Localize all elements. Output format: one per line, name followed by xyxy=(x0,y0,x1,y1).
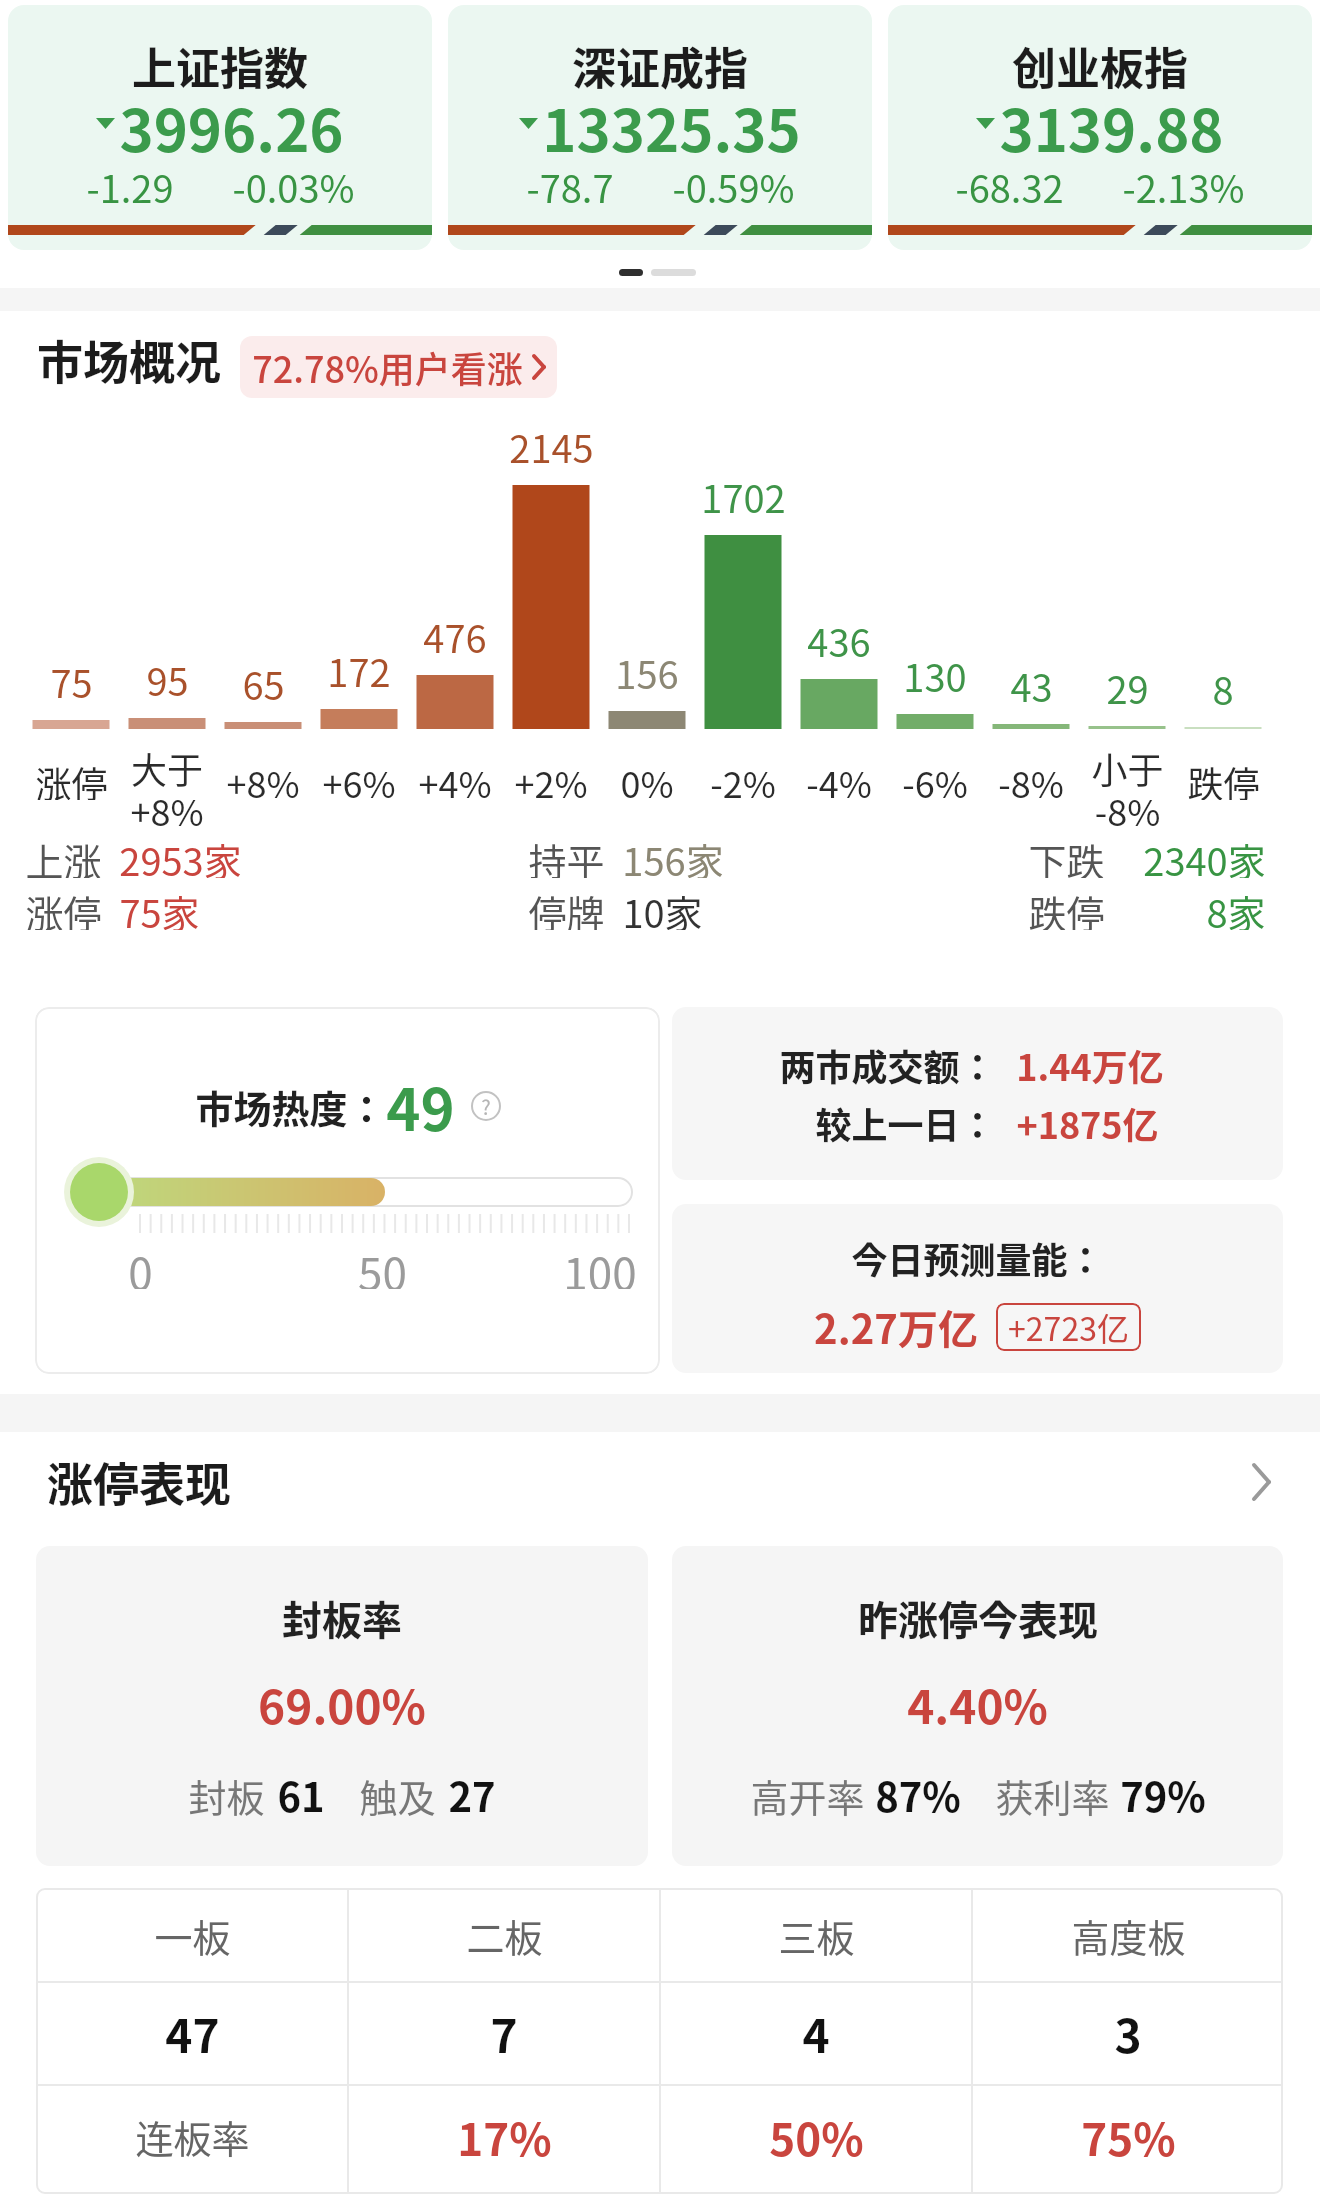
staticText: 2953家 xyxy=(119,832,242,878)
staticText: 4.40% xyxy=(907,1671,1048,1738)
staticText: 79% xyxy=(1120,1766,1206,1824)
staticText: -1.29 xyxy=(86,159,174,203)
staticText: 市场热度： xyxy=(195,1079,386,1134)
staticText: 持平 xyxy=(528,832,605,878)
staticText: 95 xyxy=(146,652,189,698)
staticText: 3996.26 xyxy=(119,85,344,159)
staticText: 获利率 xyxy=(995,1768,1110,1823)
button[interactable]: 今日预测量能： xyxy=(672,1204,1283,1373)
staticText: -8% xyxy=(998,756,1064,800)
staticText: 涨停表现 xyxy=(47,1448,231,1510)
staticText: +1875亿 xyxy=(1016,1097,1159,1149)
staticText: 小于 -8% xyxy=(1091,742,1164,830)
staticText: 创业板指 xyxy=(1012,34,1188,90)
staticText: 4 xyxy=(802,2000,830,2067)
staticText: 10家 xyxy=(622,884,703,930)
staticText: 156家 xyxy=(622,832,724,878)
staticText: -68.32 xyxy=(955,159,1064,203)
staticText: -6% xyxy=(902,756,968,800)
staticText: 2.27万亿 xyxy=(814,1298,978,1356)
staticText: -0.59% xyxy=(672,159,795,203)
button[interactable]: 昨涨停今表现 xyxy=(672,1546,1283,1866)
staticText: 72.78%用户看涨 xyxy=(252,341,523,393)
staticText: 2340家 xyxy=(1143,832,1266,878)
staticText: 封板 xyxy=(188,1768,265,1823)
staticText: 1702 xyxy=(701,469,786,515)
staticText: 上证指数 xyxy=(132,34,308,90)
staticText: 3139.88 xyxy=(999,85,1224,159)
staticText: 涨停 xyxy=(35,756,108,800)
staticText: 436 xyxy=(807,613,871,659)
button[interactable]: 两市成交额： xyxy=(672,1007,1283,1180)
staticText: 13325.35 xyxy=(542,85,801,159)
staticText: 17% xyxy=(457,2105,552,2169)
staticText: 0% xyxy=(620,756,674,800)
button[interactable]: 封板率 xyxy=(36,1546,648,1866)
staticText: 大于 +8% xyxy=(130,742,204,830)
staticText: 7 xyxy=(490,2000,518,2067)
staticText: +4% xyxy=(418,756,492,800)
staticText: 昨涨停今表现 xyxy=(858,1589,1098,1647)
staticText: 3 xyxy=(1114,2000,1142,2067)
staticText: 封板率 xyxy=(282,1589,402,1647)
staticText: 29 xyxy=(1106,660,1149,706)
staticText: +8% xyxy=(226,756,300,800)
staticText: +6% xyxy=(322,756,396,800)
staticText: 8家 xyxy=(1206,884,1266,930)
staticText: 50 xyxy=(358,1239,407,1289)
staticText: 今日预测量能： xyxy=(851,1232,1104,1284)
staticText: 连板率 xyxy=(135,2109,250,2164)
button[interactable]: 72.78%用户看涨 xyxy=(240,336,557,398)
staticText: 二板 xyxy=(466,1908,543,1963)
staticText: 61 xyxy=(277,1766,325,1824)
staticText: 75家 xyxy=(119,884,200,930)
staticText: 65 xyxy=(242,656,285,702)
staticText: 三板 xyxy=(778,1908,855,1963)
staticText: 较上一日： xyxy=(815,1097,996,1149)
staticText: 75% xyxy=(1081,2105,1176,2169)
staticText: -0.03% xyxy=(232,159,355,203)
staticText: 8 xyxy=(1212,661,1234,707)
staticText: 下跌 xyxy=(1028,832,1105,878)
staticText: 47 xyxy=(165,2000,220,2067)
staticText: 75 xyxy=(50,654,93,700)
button[interactable]: 深证成指 xyxy=(448,5,872,250)
staticText: 一板 xyxy=(154,1908,231,1963)
staticText: 停牌 xyxy=(528,884,605,930)
staticText: 49 xyxy=(386,1064,455,1148)
staticText: +2723亿 xyxy=(1008,1304,1129,1350)
staticText: +2% xyxy=(514,756,588,800)
staticText: 跌停 xyxy=(1028,884,1105,930)
staticText: 高度板 xyxy=(1071,1908,1186,1963)
staticText: 43 xyxy=(1010,658,1053,704)
button[interactable]: 涨停表现 xyxy=(0,1448,1320,1518)
staticText: 跌停 xyxy=(1187,756,1260,800)
staticText: -2.13% xyxy=(1122,159,1245,203)
staticText: 27 xyxy=(448,1766,496,1824)
staticText: 触及 xyxy=(359,1768,436,1823)
staticText: 深证成指 xyxy=(572,34,748,90)
staticText: 市场概况 xyxy=(37,326,221,386)
staticText: 172 xyxy=(327,643,391,689)
staticText: ? xyxy=(481,1092,491,1121)
staticText: 69.00% xyxy=(258,1671,426,1738)
staticText: 50% xyxy=(769,2105,864,2169)
button[interactable]: 上证指数 xyxy=(8,5,432,250)
staticText: -78.7 xyxy=(526,159,614,203)
button[interactable]: 市场热度： xyxy=(35,1007,660,1374)
staticText: 两市成交额： xyxy=(779,1039,996,1091)
staticText: 2145 xyxy=(509,419,594,465)
staticText: -4% xyxy=(806,756,872,800)
staticText: 100 xyxy=(563,1239,637,1289)
staticText: 高开率 xyxy=(750,1768,865,1823)
staticText: 涨停 xyxy=(25,884,102,930)
staticText: 87% xyxy=(875,1766,961,1824)
staticText: 上涨 xyxy=(25,832,102,878)
staticText: -2% xyxy=(710,756,776,800)
staticText: 476 xyxy=(423,609,487,655)
staticText: 1.44万亿 xyxy=(1016,1039,1164,1091)
button[interactable]: 创业板指 xyxy=(888,5,1312,250)
staticText: 130 xyxy=(903,648,967,694)
staticText: 0 xyxy=(128,1239,153,1289)
staticText: 156 xyxy=(615,645,679,691)
